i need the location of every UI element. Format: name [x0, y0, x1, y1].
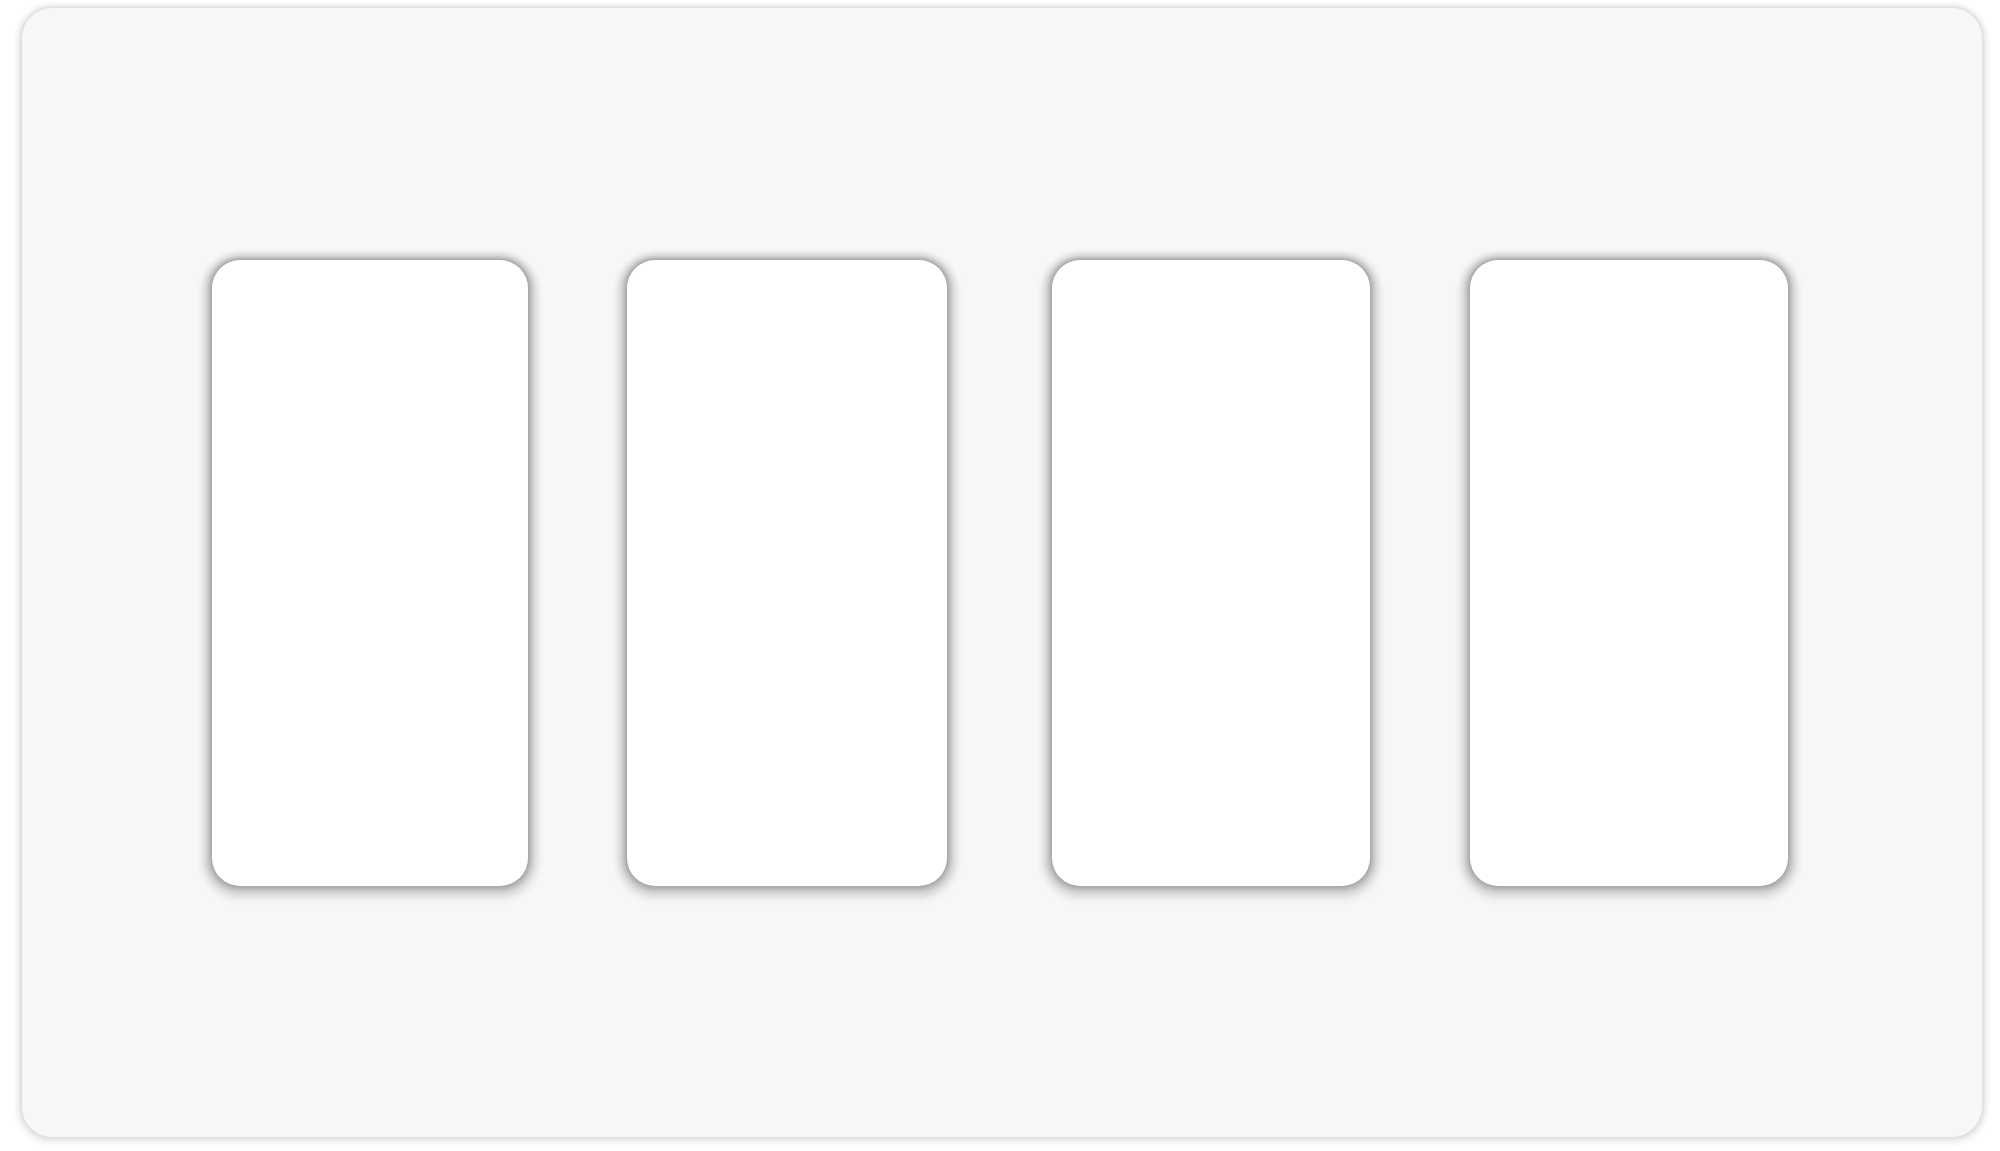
button[interactable]: Card 1: [212, 260, 528, 886]
button[interactable]: Card 4: [1470, 260, 1788, 886]
button[interactable]: Card 3: [1052, 260, 1370, 886]
button[interactable]: Card 2: [627, 260, 947, 886]
